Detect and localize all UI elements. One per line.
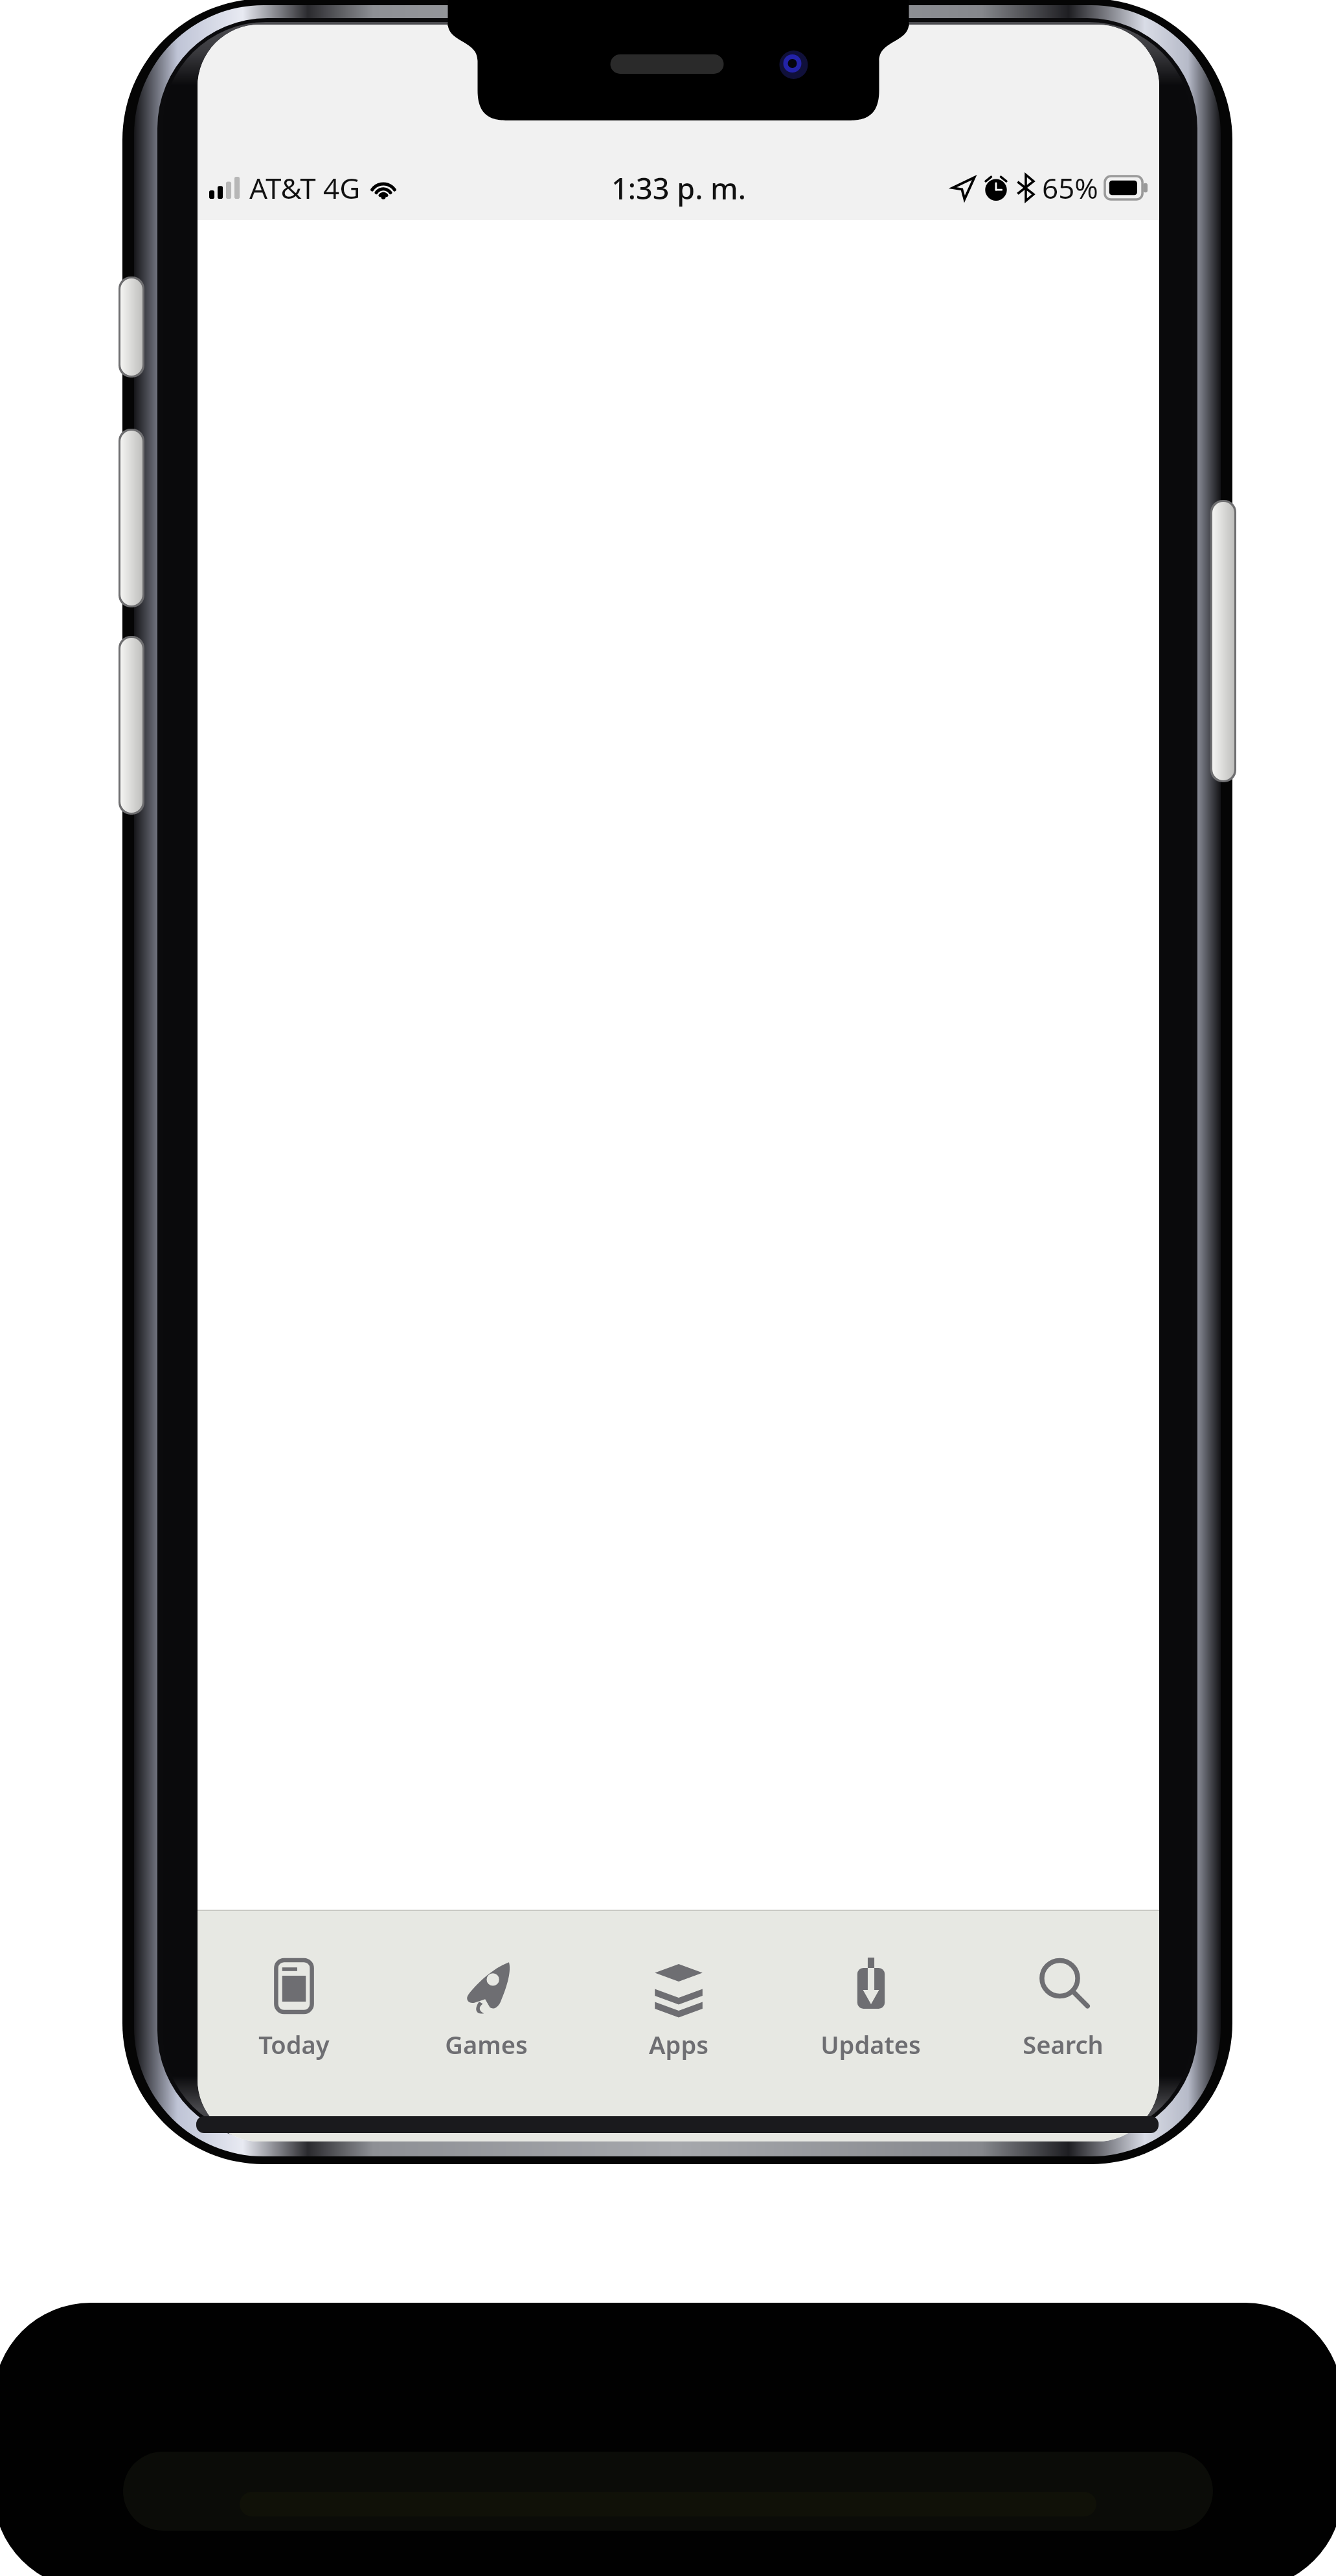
- staticText: Updates: [821, 2028, 921, 2061]
- button[interactable]: Search: [967, 1911, 1159, 2141]
- staticText: AT&T 4G: [249, 168, 361, 207]
- staticText: Search: [1023, 2028, 1104, 2061]
- button[interactable]: Today: [198, 1911, 390, 2141]
- staticText: Apps: [649, 2028, 708, 2061]
- button[interactable]: Games: [390, 1911, 582, 2141]
- staticText: Games: [445, 2028, 528, 2061]
- button[interactable]: Updates: [775, 1911, 967, 2141]
- staticText: 65%: [1042, 168, 1098, 207]
- button[interactable]: Apps: [582, 1911, 775, 2141]
- staticText: 1:33 p. m.: [611, 168, 746, 208]
- staticText: Today: [258, 2028, 330, 2061]
